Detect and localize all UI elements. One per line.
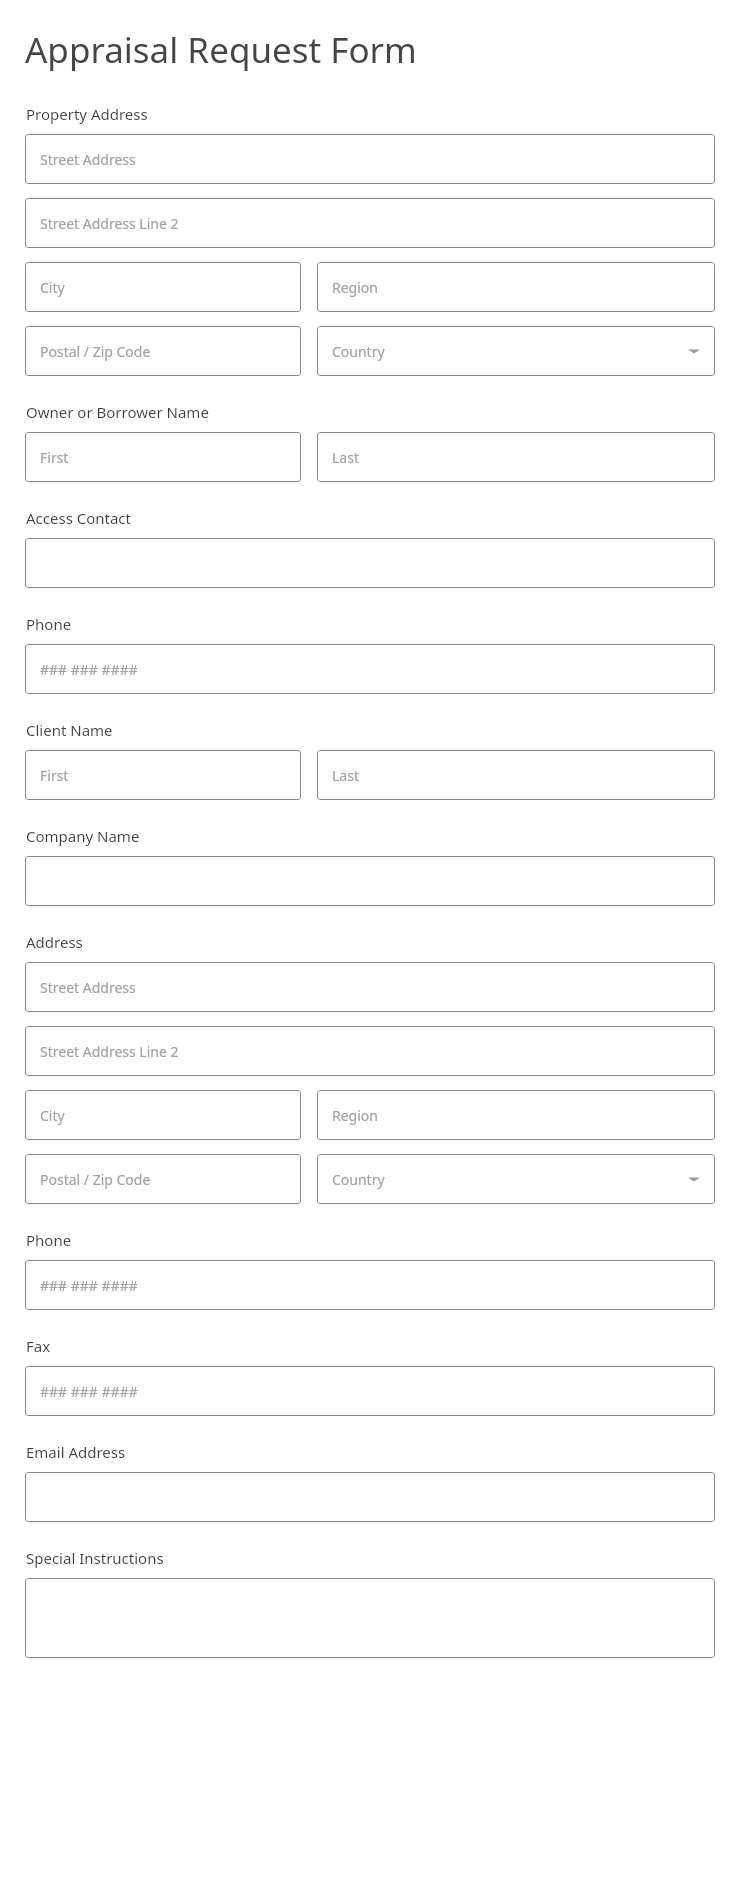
button[interactable]: First — [25, 750, 301, 800]
staticText: Postal / Zip Code — [40, 1170, 151, 1189]
staticText: City — [40, 278, 65, 297]
staticText: Region — [332, 278, 378, 297]
staticText: Address — [26, 932, 83, 952]
button[interactable]: Street Address Line 2 — [25, 198, 715, 248]
staticText: Appraisal Request Form — [25, 26, 417, 74]
button[interactable]: Postal / Zip Code — [25, 1154, 301, 1204]
staticText: Client Name — [26, 720, 113, 740]
button[interactable] — [25, 856, 715, 906]
staticText: Email Address — [26, 1442, 126, 1462]
button[interactable]: Region — [317, 262, 715, 312]
staticText: Fax — [26, 1336, 51, 1356]
button[interactable]: Postal / Zip Code — [25, 326, 301, 376]
staticText: Phone — [26, 614, 72, 634]
staticText: Country — [332, 342, 385, 361]
staticText: Street Address Line 2 — [40, 1042, 179, 1061]
staticText: Street Address Line 2 — [40, 214, 179, 233]
other: Open dropdown — [688, 1175, 700, 1183]
button[interactable]: City — [25, 1090, 301, 1140]
button[interactable]: ### ### #### — [25, 644, 715, 694]
staticText: Postal / Zip Code — [40, 342, 151, 361]
staticText: Phone — [26, 1230, 72, 1250]
staticText: ### ### #### — [40, 1382, 138, 1401]
staticText: Company Name — [26, 826, 140, 846]
button[interactable]: City — [25, 262, 301, 312]
staticText: Region — [332, 1106, 378, 1125]
other: Open dropdown — [688, 347, 700, 355]
button[interactable]: ### ### #### — [25, 1366, 715, 1416]
button[interactable]: Last — [317, 750, 715, 800]
button[interactable] — [25, 538, 715, 588]
button[interactable]: Country — [317, 1154, 715, 1204]
button[interactable] — [25, 1578, 715, 1658]
staticText: City — [40, 1106, 65, 1125]
staticText: First — [40, 448, 69, 467]
staticText: ### ### #### — [40, 660, 138, 679]
staticText: ### ### #### — [40, 1276, 138, 1295]
button[interactable]: Last — [317, 432, 715, 482]
button[interactable]: Street Address — [25, 134, 715, 184]
staticText: Property Address — [26, 104, 148, 124]
button[interactable]: Street Address — [25, 962, 715, 1012]
button[interactable]: ### ### #### — [25, 1260, 715, 1310]
staticText: Access Contact — [26, 508, 131, 528]
staticText: Street Address — [40, 150, 136, 169]
staticText: First — [40, 766, 69, 785]
staticText: Last — [332, 766, 359, 785]
button[interactable] — [25, 1472, 715, 1522]
button[interactable]: Region — [317, 1090, 715, 1140]
button[interactable]: First — [25, 432, 301, 482]
staticText: Country — [332, 1170, 385, 1189]
staticText: Special Instructions — [26, 1548, 164, 1568]
staticText: Last — [332, 448, 359, 467]
button[interactable]: Street Address Line 2 — [25, 1026, 715, 1076]
staticText: Street Address — [40, 978, 136, 997]
button[interactable]: Country — [317, 326, 715, 376]
staticText: Owner or Borrower Name — [26, 402, 209, 422]
